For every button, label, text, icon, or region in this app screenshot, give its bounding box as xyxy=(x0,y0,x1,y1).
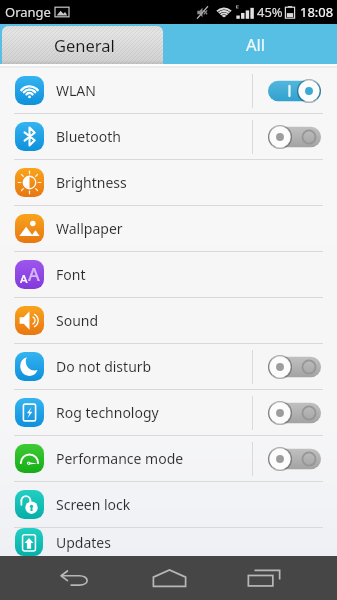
button[interactable]: Brightness xyxy=(0,160,337,205)
button[interactable] xyxy=(268,79,321,103)
button[interactable] xyxy=(268,401,321,425)
staticText: Wallpaper xyxy=(56,219,123,238)
staticText: WLAN xyxy=(56,81,96,100)
button[interactable]: Back xyxy=(44,556,106,600)
staticText: General xyxy=(54,34,115,56)
staticText: Rog technology xyxy=(56,403,159,422)
staticText: Do not disturb xyxy=(56,357,152,376)
button[interactable]: Sound xyxy=(0,298,337,343)
button[interactable] xyxy=(268,355,321,379)
button[interactable] xyxy=(268,447,321,471)
button[interactable]: Updates xyxy=(0,528,337,556)
staticText: Font xyxy=(56,265,86,284)
button[interactable]: A xyxy=(0,252,337,297)
staticText: All xyxy=(246,33,266,55)
staticText: Sound xyxy=(56,311,99,330)
button[interactable]: General xyxy=(2,26,163,64)
staticText: Orange xyxy=(5,3,51,21)
button[interactable]: Rog technology xyxy=(0,390,337,435)
staticText: 45% xyxy=(257,3,283,21)
button[interactable]: Recent apps xyxy=(233,556,295,600)
staticText: Brightness xyxy=(56,173,127,192)
staticText: Updates xyxy=(56,533,111,552)
staticText: Screen lock xyxy=(56,495,131,514)
button[interactable]: WLAN xyxy=(0,68,337,113)
button[interactable]: Home xyxy=(138,556,200,600)
staticText: A xyxy=(28,262,40,287)
button[interactable] xyxy=(268,125,321,149)
staticText: Bluetooth xyxy=(56,127,121,146)
button[interactable]: Performance mode xyxy=(0,436,337,481)
staticText: Performance mode xyxy=(56,449,184,468)
button[interactable]: Screen lock xyxy=(0,482,337,527)
staticText: 18:08 xyxy=(300,3,334,21)
staticText: A xyxy=(20,271,28,287)
button[interactable]: Wallpaper xyxy=(0,206,337,251)
button[interactable]: Do not disturb xyxy=(0,344,337,389)
button[interactable]: Bluetooth xyxy=(0,114,337,159)
button[interactable]: All xyxy=(163,24,337,64)
